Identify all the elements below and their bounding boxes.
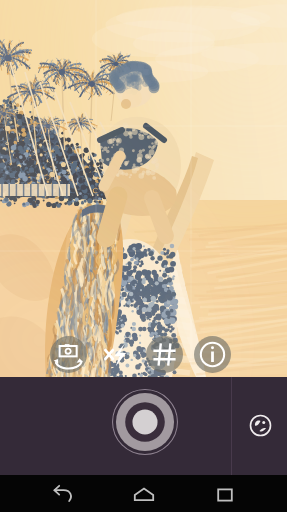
button[interactable]: Switch camera xyxy=(50,336,87,373)
button[interactable]: Back xyxy=(42,475,82,512)
button[interactable]: Recent apps xyxy=(205,475,245,512)
button[interactable]: Effects xyxy=(248,413,273,438)
button[interactable]: Shutter xyxy=(112,389,178,455)
button[interactable]: Flash off xyxy=(98,336,135,373)
button[interactable]: Grid xyxy=(146,336,183,373)
button[interactable]: Info xyxy=(194,336,231,373)
button[interactable]: Home xyxy=(124,475,164,512)
